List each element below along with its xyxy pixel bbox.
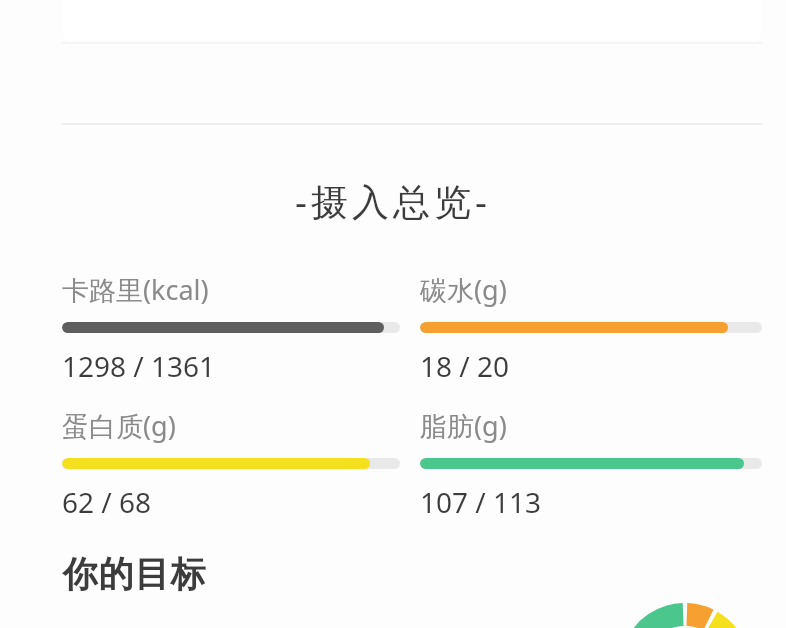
- button[interactable]: 目标营养比例图: [620, 603, 750, 628]
- staticText: 卡路里(kcal): [62, 271, 209, 308]
- staticText: 你的目标: [62, 552, 206, 596]
- staticText: 脂肪(g): [420, 407, 507, 444]
- button[interactable]: 卡路里(kcal): [62, 271, 400, 385]
- staticText: 蛋白质(g): [62, 407, 176, 444]
- button[interactable]: 碳水(g): [420, 271, 762, 385]
- staticText: 107 / 113: [420, 483, 542, 521]
- staticText: 碳水(g): [420, 271, 507, 308]
- staticText: 1298 / 1361: [62, 347, 216, 385]
- staticText: 62 / 68: [62, 483, 152, 521]
- button[interactable]: 蛋白质(g): [62, 407, 400, 521]
- button[interactable]: 脂肪(g): [420, 407, 762, 521]
- staticText: -摄入总览-: [295, 175, 491, 226]
- staticText: 18 / 20: [420, 347, 510, 385]
